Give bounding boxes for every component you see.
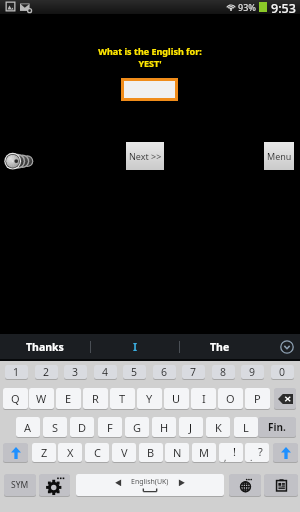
staticText: R — [92, 391, 99, 406]
button[interactable]: R — [83, 388, 108, 410]
button[interactable]: Y — [137, 388, 162, 410]
staticText: SYM — [11, 479, 29, 491]
button[interactable]: J — [179, 417, 203, 438]
button[interactable]: 4 — [94, 365, 117, 380]
staticText: E — [65, 391, 72, 406]
staticText: 93% — [238, 1, 256, 13]
button[interactable]: E — [56, 388, 81, 410]
staticText: , — [224, 451, 227, 462]
button[interactable]: H — [152, 417, 176, 438]
button[interactable]: 8 — [212, 365, 235, 380]
staticText: ? — [258, 444, 263, 459]
button[interactable]: The — [180, 334, 260, 360]
staticText: . — [250, 451, 253, 462]
staticText: 9:53 — [271, 0, 296, 14]
button[interactable]: D — [70, 417, 94, 438]
button[interactable]: Next >> — [126, 142, 164, 170]
staticText: Next >> — [129, 150, 162, 162]
staticText: I — [133, 340, 138, 354]
button[interactable]: 7 — [182, 365, 205, 380]
button[interactable]: Z — [32, 443, 56, 463]
button[interactable]: C — [85, 443, 109, 463]
button[interactable]: T — [110, 388, 135, 410]
button[interactable]: 1 — [5, 365, 28, 380]
button[interactable]: X — [58, 443, 82, 463]
button[interactable]: G — [125, 417, 149, 438]
staticText: The — [210, 340, 230, 354]
staticText: Z — [41, 445, 48, 460]
button[interactable]: L — [234, 417, 258, 438]
button[interactable]: A — [16, 417, 40, 438]
staticText: What is the English for: YEST' — [98, 45, 202, 70]
staticText: 0 — [279, 365, 286, 379]
staticText: P — [254, 391, 261, 406]
staticText: Fin. — [268, 420, 286, 434]
staticText: X — [67, 445, 74, 460]
staticText: English(UK) — [131, 477, 169, 487]
button[interactable]: Q — [3, 388, 28, 410]
staticText: 4 — [102, 365, 109, 379]
button[interactable]: P — [245, 388, 270, 410]
button[interactable]: Shift — [273, 443, 298, 463]
button[interactable]: Menu — [264, 142, 294, 170]
button[interactable]: 2 — [35, 365, 58, 380]
button[interactable]: S — [43, 417, 67, 438]
staticText: 9 — [249, 365, 256, 379]
staticText: V — [121, 445, 128, 460]
staticText: 3 — [72, 365, 79, 379]
button[interactable]: Shift — [3, 443, 28, 463]
button[interactable]: Backspace — [274, 388, 296, 410]
staticText: 5 — [131, 365, 138, 379]
button[interactable]: F — [98, 417, 122, 438]
staticText: 6 — [161, 365, 168, 379]
staticText: Thanks — [26, 340, 64, 354]
button[interactable]: B — [139, 443, 163, 463]
staticText: B — [147, 445, 155, 460]
staticText: C — [94, 445, 101, 460]
button[interactable]: Space — [76, 474, 224, 497]
staticText: D — [78, 420, 87, 435]
staticText: 7 — [190, 365, 197, 379]
button[interactable]: Settings — [39, 474, 70, 497]
button[interactable]: Change language — [229, 474, 261, 497]
button[interactable]: N — [165, 443, 189, 463]
button[interactable]: 3 — [64, 365, 87, 380]
button[interactable]: Clipboard — [264, 474, 298, 497]
staticText: 8 — [220, 365, 227, 379]
button[interactable]: Thanks — [0, 334, 90, 360]
staticText: U — [172, 391, 181, 406]
staticText: T — [119, 391, 126, 406]
staticText: Menu — [267, 150, 292, 162]
staticText: W — [36, 391, 47, 406]
button[interactable]: K — [206, 417, 230, 438]
button[interactable]: 0 — [271, 365, 294, 380]
button[interactable]: Speak — [0, 144, 30, 174]
button[interactable]: 5 — [123, 365, 146, 380]
staticText: 1 — [13, 365, 20, 379]
staticText: 2 — [43, 365, 50, 379]
button[interactable]: ! — [219, 443, 243, 463]
button[interactable]: 9 — [241, 365, 264, 380]
button[interactable]: M — [192, 443, 216, 463]
staticText: M — [199, 445, 209, 460]
button[interactable]: I — [191, 388, 216, 410]
staticText: Q — [11, 391, 20, 406]
button[interactable]: More suggestions — [274, 334, 300, 360]
button[interactable]: ? — [245, 443, 269, 463]
button[interactable]: V — [112, 443, 136, 463]
button[interactable]: Fin. — [258, 417, 296, 438]
staticText: ! — [233, 444, 236, 459]
staticText: O — [226, 391, 235, 406]
staticText: N — [173, 445, 182, 460]
button[interactable]: W — [29, 388, 54, 410]
button[interactable]: I — [91, 334, 179, 360]
button[interactable]: U — [164, 388, 189, 410]
staticText: F — [107, 420, 113, 435]
button[interactable]: SYM — [4, 474, 36, 497]
button[interactable]: 6 — [153, 365, 176, 380]
staticText: H — [160, 420, 169, 435]
button[interactable]: O — [218, 388, 243, 410]
staticText: S — [52, 420, 59, 435]
staticText: A — [24, 420, 32, 435]
